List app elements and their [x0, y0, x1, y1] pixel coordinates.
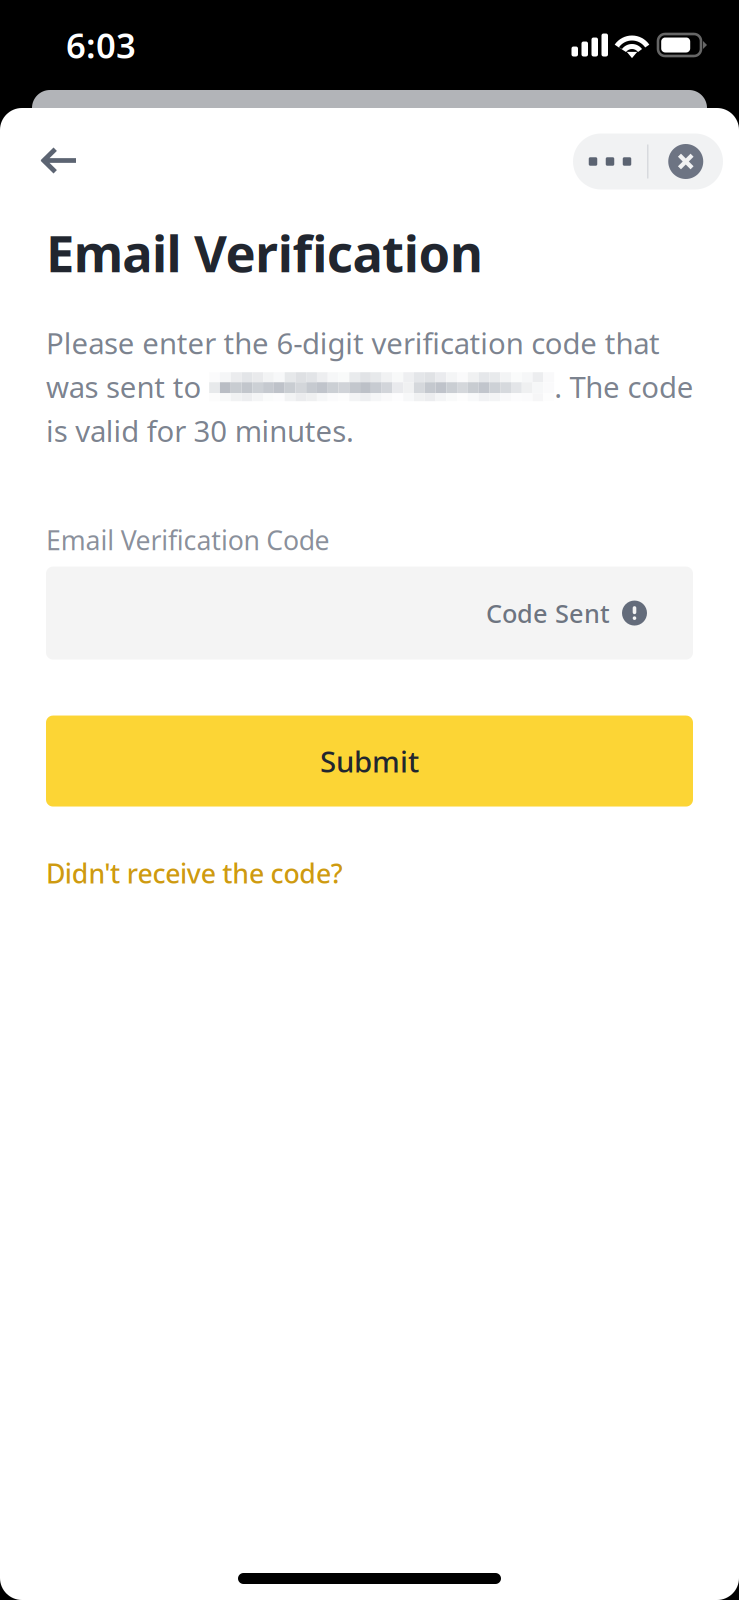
staticText: 6:03: [66, 22, 136, 68]
staticText: Please enter the 6-digit verification co…: [46, 323, 660, 362]
button[interactable]: Submit: [46, 716, 693, 807]
staticText: was sent to: [46, 367, 209, 406]
staticText: Submit: [320, 742, 419, 781]
button[interactable]: Close: [648, 133, 723, 189]
button[interactable]: Code Sent: [46, 567, 693, 660]
staticText: Email Verification: [46, 219, 483, 286]
button[interactable]: Didn't receive the code?: [46, 856, 343, 891]
staticText: is valid for 30 minutes.: [46, 411, 354, 450]
staticText: Didn't receive the code?: [46, 856, 343, 891]
button[interactable]: More: [573, 133, 647, 189]
staticText: Email Verification Code: [46, 522, 330, 557]
staticText: Code Sent: [486, 596, 610, 630]
staticText: . The code: [554, 367, 694, 406]
button[interactable]: Back: [28, 135, 90, 173]
